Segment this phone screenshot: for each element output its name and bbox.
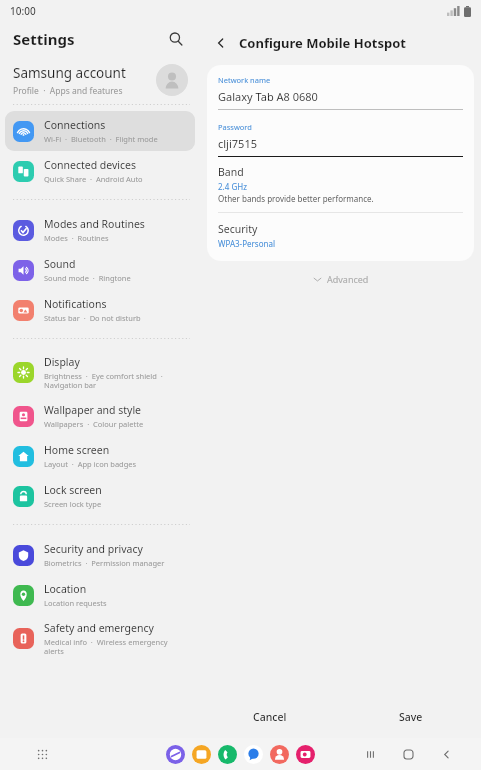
staticText: Connected devices	[44, 158, 137, 172]
staticText: Cancel	[253, 710, 287, 724]
staticText: Lock screen	[44, 483, 102, 497]
button[interactable]: Search	[162, 25, 190, 53]
button[interactable]: Notifications	[5, 290, 195, 330]
staticText: Wallpapers · Colour palette	[44, 419, 144, 429]
staticText: Safety and emergency	[44, 621, 154, 635]
staticText: Location requests	[44, 598, 107, 608]
staticText: Samsung account	[13, 64, 126, 82]
staticText: Advanced	[327, 273, 369, 285]
button[interactable]: Home	[397, 743, 419, 765]
staticText: Location	[44, 582, 87, 596]
staticText: Network name	[218, 75, 271, 85]
button[interactable]: Connections	[5, 111, 195, 151]
button[interactable]: internet	[166, 745, 185, 764]
button[interactable]: Recents	[359, 743, 381, 765]
staticText: Biometrics · Permission manager	[44, 558, 165, 568]
staticText: Other bands provide better performance.	[218, 193, 374, 204]
staticText: Security	[218, 222, 258, 236]
staticText: Home screen	[44, 443, 110, 457]
staticText: Modes · Routines	[44, 233, 109, 243]
button[interactable]: Samsung account	[0, 56, 200, 104]
staticText: Medical info · Wireless emergency alerts	[44, 637, 168, 657]
button[interactable]: Advanced	[200, 261, 481, 297]
staticText: Layout · App icon badges	[44, 459, 137, 469]
staticText: Wallpaper and style	[44, 403, 142, 417]
button[interactable]: Connected devices	[5, 151, 195, 191]
staticText: Modes and Routines	[44, 217, 145, 231]
button[interactable]: Back	[435, 743, 457, 765]
button[interactable]: Security	[218, 222, 463, 249]
button[interactable]: Cancel	[200, 700, 340, 734]
staticText: Wi-Fi · Bluetooth · Flight mode	[44, 134, 158, 144]
staticText: WPA3-Personal	[218, 238, 275, 249]
button[interactable]: messages	[244, 745, 263, 764]
staticText: Password	[218, 122, 252, 132]
staticText: Notifications	[44, 297, 107, 311]
button[interactable]: Security and privacy	[5, 535, 195, 575]
button[interactable]: Wallpaper and style	[5, 396, 195, 436]
staticText: Band	[218, 165, 244, 179]
staticText: Save	[399, 710, 423, 724]
staticText: Settings	[13, 29, 75, 49]
staticText: Status bar · Do not disturb	[44, 313, 141, 323]
button[interactable]: contacts	[270, 745, 289, 764]
button[interactable]: Back	[208, 30, 234, 56]
staticText: Sound	[44, 257, 76, 271]
staticText: Display	[44, 355, 80, 369]
staticText: Brightness · Eye comfort shield · Naviga…	[44, 371, 163, 391]
button[interactable]: Safety and emergency	[5, 615, 195, 662]
staticText: Galaxy Tab A8 0680	[218, 89, 318, 104]
button[interactable]: phone	[218, 745, 237, 764]
button[interactable]: Lock screen	[5, 476, 195, 516]
button[interactable]: files	[192, 745, 211, 764]
staticText: 2.4 GHz	[218, 181, 247, 192]
button[interactable]: Home screen	[5, 436, 195, 476]
button[interactable]: Save	[340, 700, 481, 734]
staticText: Security and privacy	[44, 542, 143, 556]
button[interactable]: Modes and Routines	[5, 210, 195, 250]
staticText: clji7515	[218, 136, 257, 151]
button[interactable]: Location	[5, 575, 195, 615]
staticText: Screen lock type	[44, 499, 102, 509]
button[interactable]: camera	[296, 745, 315, 764]
staticText: Profile · Apps and features	[13, 85, 123, 97]
staticText: Configure Mobile Hotspot	[239, 34, 406, 52]
staticText: Quick Share · Android Auto	[44, 174, 143, 184]
button[interactable]: Sound	[5, 250, 195, 290]
staticText: Sound mode · Ringtone	[44, 273, 131, 283]
button[interactable]: Apps	[30, 742, 54, 766]
staticText: 10:00	[10, 4, 36, 18]
button[interactable]: Display	[5, 349, 195, 396]
button[interactable]: Band	[218, 165, 463, 204]
staticText: Connections	[44, 118, 106, 132]
